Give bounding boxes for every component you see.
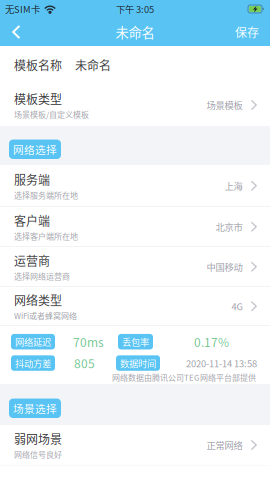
staticText: 运营商 (14, 252, 50, 269)
staticText: 上海 (225, 179, 243, 192)
staticText: 网络类型 (14, 291, 62, 309)
button[interactable]: 模板类型 (0, 84, 270, 126)
staticText: 选择网络运营商 (14, 270, 70, 282)
staticText: 场景选择 (13, 401, 57, 416)
staticText: 抖动方差 (15, 356, 51, 370)
staticText: 805 (74, 354, 95, 372)
button[interactable]: 模板名称 (0, 46, 270, 84)
button[interactable]: 返回 (0, 18, 31, 46)
staticText: 模板类型 (14, 90, 62, 107)
button[interactable]: 保存 (223, 18, 270, 46)
staticText: 4G (232, 299, 243, 313)
staticText: 网络信号良好 (14, 448, 62, 460)
staticText: 服务端 (14, 171, 50, 188)
staticText: 网络数据由腾讯公司TEG网络平台部提供 (112, 371, 256, 383)
staticText: 无SIM卡 (5, 2, 40, 16)
staticText: 中国移动 (207, 260, 243, 273)
staticText: 0.17% (194, 333, 229, 350)
staticText: 场景模板 (207, 98, 243, 112)
staticText: 正常网络 (207, 438, 243, 452)
button[interactable]: 弱网场景 (0, 425, 270, 465)
staticText: 70ms (73, 333, 104, 350)
button[interactable]: 服务端 (0, 165, 270, 206)
button[interactable]: 运营商 (0, 247, 270, 286)
staticText: 下午 3:05 (116, 2, 154, 16)
staticText: 场景模板/自定义模板 (14, 108, 89, 120)
staticText: 北京市 (216, 220, 243, 233)
staticText: 选择服务端所在地 (14, 189, 78, 201)
staticText: WiFi或者蜂窝网络 (14, 310, 77, 321)
staticText: 数据时间 (120, 356, 156, 370)
staticText: 模板名称 (14, 56, 62, 74)
staticText: 网络选择 (13, 142, 57, 157)
staticText: 弱网场景 (14, 430, 62, 447)
staticText: 选择客户端所在地 (14, 230, 78, 242)
staticText: 保存 (235, 23, 259, 41)
button[interactable]: 客户端 (0, 207, 270, 246)
staticText: 2020-11-14 13:58 (186, 356, 257, 370)
staticText: 未命名 (115, 22, 154, 42)
staticText: 网络延迟 (15, 335, 51, 348)
staticText: 客户端 (14, 212, 50, 229)
staticText: 未命名 (75, 56, 111, 74)
button[interactable]: 网络类型 (0, 287, 270, 325)
staticText: 丢包率 (122, 335, 149, 348)
